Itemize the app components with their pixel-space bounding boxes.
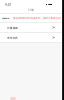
button[interactable]: 温馨提示 (0, 14, 62, 22)
button[interactable]: Submit (10, 97, 16, 100)
other: Open (52, 36, 55, 39)
other: Open (52, 26, 55, 29)
staticText: 温馨提示 (2, 17, 10, 19)
button[interactable]: 支付方式 (0, 33, 62, 42)
staticText: 请在规定时间内完成支付，超时订单将自动取消哦 (13, 17, 62, 20)
staticText: 订单 (28, 8, 34, 12)
button[interactable]: 订单信息 (0, 23, 62, 32)
staticText: 订单信息 (7, 26, 18, 29)
staticText: 支付方式 (7, 36, 18, 39)
staticText: 9:41 (5, 3, 12, 7)
